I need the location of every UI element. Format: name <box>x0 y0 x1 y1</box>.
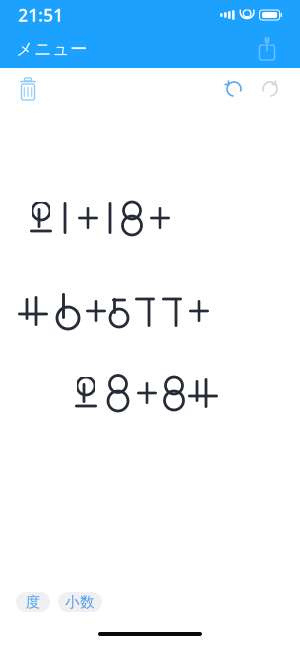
staticText: メニュー <box>16 38 87 60</box>
button[interactable]: Undo <box>216 71 252 107</box>
staticText: 21:51 <box>18 3 63 26</box>
button[interactable]: Delete <box>0 69 48 109</box>
button[interactable]: メニュー <box>0 30 103 68</box>
button[interactable]: 小数 <box>58 592 102 612</box>
button[interactable]: 度 <box>16 592 50 612</box>
button[interactable]: Redo <box>252 71 300 107</box>
staticText: 度 <box>25 593 40 611</box>
staticText: 小数 <box>65 593 95 611</box>
button[interactable]: Share <box>248 30 300 68</box>
